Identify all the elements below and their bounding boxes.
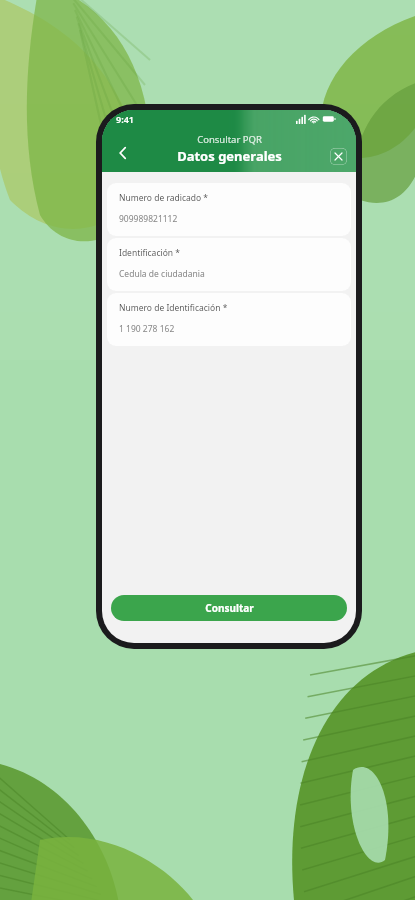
staticText: Numero de radicado * xyxy=(119,192,209,204)
staticText: 909989821112 xyxy=(119,213,178,225)
staticText: Consultar PQR xyxy=(197,133,262,146)
staticText: 9:41 xyxy=(116,113,134,125)
staticText: Cedula de ciudadania xyxy=(119,268,205,280)
button[interactable]: Consultar xyxy=(111,595,347,621)
button[interactable]: Close xyxy=(330,148,347,165)
button[interactable]: Numero de radicado * xyxy=(107,183,351,236)
button[interactable]: Numero de Identificación * xyxy=(107,293,351,346)
button[interactable]: Back xyxy=(110,140,136,166)
staticText: Datos generales xyxy=(177,147,282,165)
staticText: Numero de Identificación * xyxy=(119,302,228,314)
staticText: Consultar xyxy=(205,601,254,615)
staticText: 1 190 278 162 xyxy=(119,323,175,335)
staticText: Identificación * xyxy=(119,247,180,259)
button[interactable]: Identificación * xyxy=(107,238,351,291)
